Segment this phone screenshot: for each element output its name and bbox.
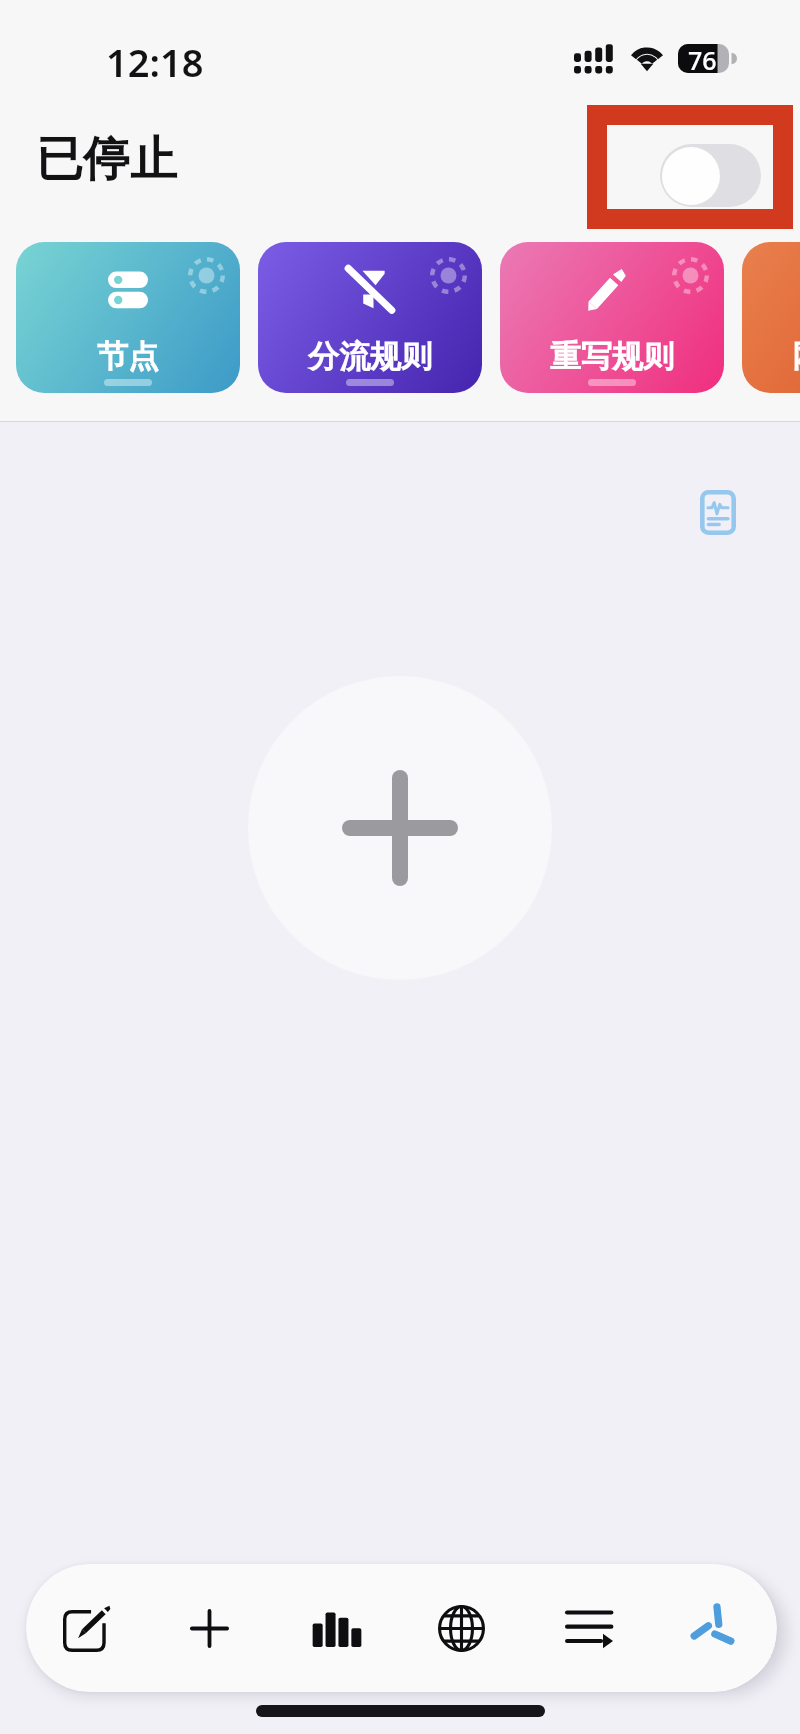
button[interactable]: Add (149, 1564, 269, 1692)
staticText: 重写规则 (550, 337, 674, 376)
staticText: 已停止 (36, 130, 177, 189)
button[interactable]: Logs (692, 485, 744, 540)
staticText: 网络诊断 (792, 337, 800, 376)
button[interactable]: 节点 (16, 242, 240, 393)
button[interactable]: Settings (654, 1564, 774, 1692)
button[interactable]: 网络诊断 (742, 242, 800, 393)
button[interactable]: Network (401, 1564, 521, 1692)
button[interactable]: 分流规则 (258, 242, 482, 393)
staticText: 节点 (97, 337, 159, 376)
button[interactable]: Compose (27, 1564, 147, 1692)
button[interactable]: Add profile (248, 676, 552, 980)
button[interactable]: Statistics (277, 1564, 397, 1692)
button[interactable]: 重写规则 (500, 242, 724, 393)
staticText: 分流规则 (308, 337, 432, 376)
staticText: 76 (688, 43, 717, 72)
button[interactable]: Requests (529, 1564, 649, 1692)
button[interactable]: Toggle proxy (660, 144, 761, 207)
staticText: 12:18 (106, 36, 204, 88)
